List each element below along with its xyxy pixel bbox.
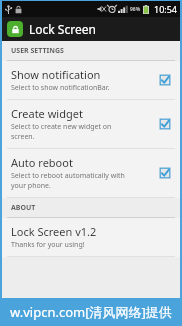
button[interactable]: Create widget <box>2 100 180 148</box>
staticText: w.vipcn.com[清风网络]提供 <box>10 303 172 321</box>
staticText: ABOUT <box>11 203 36 213</box>
staticText: Show notification <box>11 67 101 82</box>
button[interactable]: Toggle setting <box>158 117 172 131</box>
button[interactable]: Toggle setting <box>158 166 172 180</box>
button[interactable]: Auto reboot <box>2 149 180 197</box>
button[interactable]: Lock Screen v1.2 <box>2 218 180 256</box>
staticText: Select to reboot automatically with <box>11 171 125 181</box>
staticText: Auto reboot <box>11 155 73 170</box>
staticText: screen. <box>11 132 35 142</box>
staticText: Create widget <box>11 106 83 121</box>
staticText: Select to create new widget on <box>11 122 112 132</box>
button[interactable]: Lock Screen <box>2 17 180 41</box>
staticText: 96% <box>130 6 141 13</box>
staticText: Lock Screen <box>29 21 96 37</box>
staticText: Lock Screen v1.2 <box>11 224 97 239</box>
staticText: Thanks for your using! <box>11 240 85 250</box>
button[interactable]: Show notification <box>2 61 180 99</box>
staticText: USER SETTINGS <box>11 46 64 56</box>
staticText: Select to show notificationBar. <box>11 83 110 93</box>
button[interactable]: Toggle setting <box>158 73 172 87</box>
staticText: 10:54 <box>154 3 178 15</box>
staticText: your phone. <box>11 181 51 191</box>
